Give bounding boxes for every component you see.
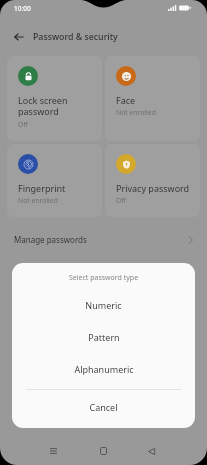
- staticText: Privacy password: [116, 182, 190, 194]
- button[interactable]: Face: [105, 56, 200, 141]
- staticText: Lock screen password: [18, 94, 68, 118]
- button[interactable]: Fingerprint: [7, 144, 102, 217]
- staticText: Password & security: [33, 31, 118, 43]
- staticText: Not enrolled: [116, 108, 156, 117]
- staticText: Alphanumeric: [74, 363, 134, 375]
- staticText: Cancel: [89, 401, 118, 413]
- button[interactable]: Cancel: [12, 391, 195, 423]
- staticText: Fingerprint: [18, 182, 66, 194]
- button[interactable]: Alphanumeric: [12, 353, 195, 385]
- staticText: Off: [18, 120, 28, 129]
- staticText: Pattern: [88, 331, 120, 343]
- button[interactable]: Pattern: [12, 321, 195, 353]
- button[interactable]: Numeric: [12, 289, 195, 321]
- button[interactable]: Manage passwords: [0, 217, 207, 261]
- staticText: Not enrolled: [18, 196, 58, 205]
- staticText: Numeric: [85, 299, 122, 311]
- staticText: Manage passwords: [14, 234, 87, 245]
- staticText: 10:00: [14, 4, 31, 13]
- button[interactable]: Recents: [46, 444, 60, 458]
- staticText: Off: [116, 196, 126, 205]
- button[interactable]: Home: [96, 444, 110, 458]
- button[interactable]: Back: [144, 444, 158, 458]
- staticText: Face: [116, 94, 136, 106]
- button[interactable]: Back: [9, 27, 29, 47]
- button[interactable]: Privacy password: [105, 144, 200, 217]
- button[interactable]: Lock screen password: [7, 56, 102, 141]
- staticText: Select password type: [12, 273, 195, 283]
